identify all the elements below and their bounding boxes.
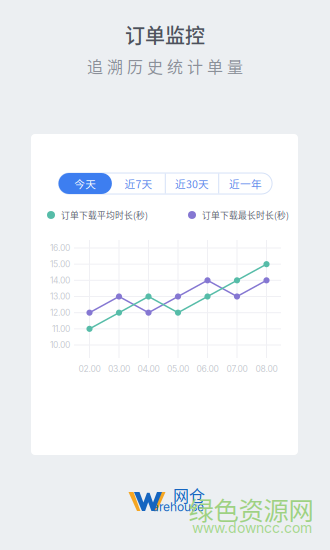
staticText: 11.00 [52,324,70,334]
button[interactable]: 近30天 [165,173,219,194]
staticText: 14.00 [50,275,70,285]
staticText: 10.00 [50,340,70,350]
staticText: arehouse [152,500,204,514]
staticText: 12.00 [50,307,70,318]
staticText: 16.00 [50,243,70,253]
staticText: www.downcc.com [192,519,312,536]
staticText: 绿色资源网 [188,491,313,527]
staticText: 追 溯 历 史 统 计 单 量 [87,54,243,78]
staticText: 近30天 [175,176,209,191]
staticText: 07.00 [226,364,247,374]
staticText: 13.00 [50,291,70,302]
button[interactable]: 今天 [58,173,112,194]
staticText: 订单下载最长时长(秒) [202,209,289,221]
staticText: 04.00 [137,364,159,374]
staticText: 今天 [74,176,96,191]
staticText: 08.00 [255,364,277,374]
staticText: 近7天 [125,176,153,191]
button[interactable]: 近7天 [112,173,165,194]
staticText: 15.00 [50,259,70,269]
button[interactable]: 近一年 [219,173,272,194]
staticText: 网仓 [173,483,205,507]
staticText: 05.00 [167,364,189,374]
staticText: 订单下载平均时长(秒) [61,209,148,221]
staticText: 02.00 [78,364,100,374]
staticText: 06.00 [196,364,218,374]
staticText: 03.00 [108,364,130,374]
staticText: 近一年 [229,176,262,191]
staticText: 订单监控 [125,20,205,49]
